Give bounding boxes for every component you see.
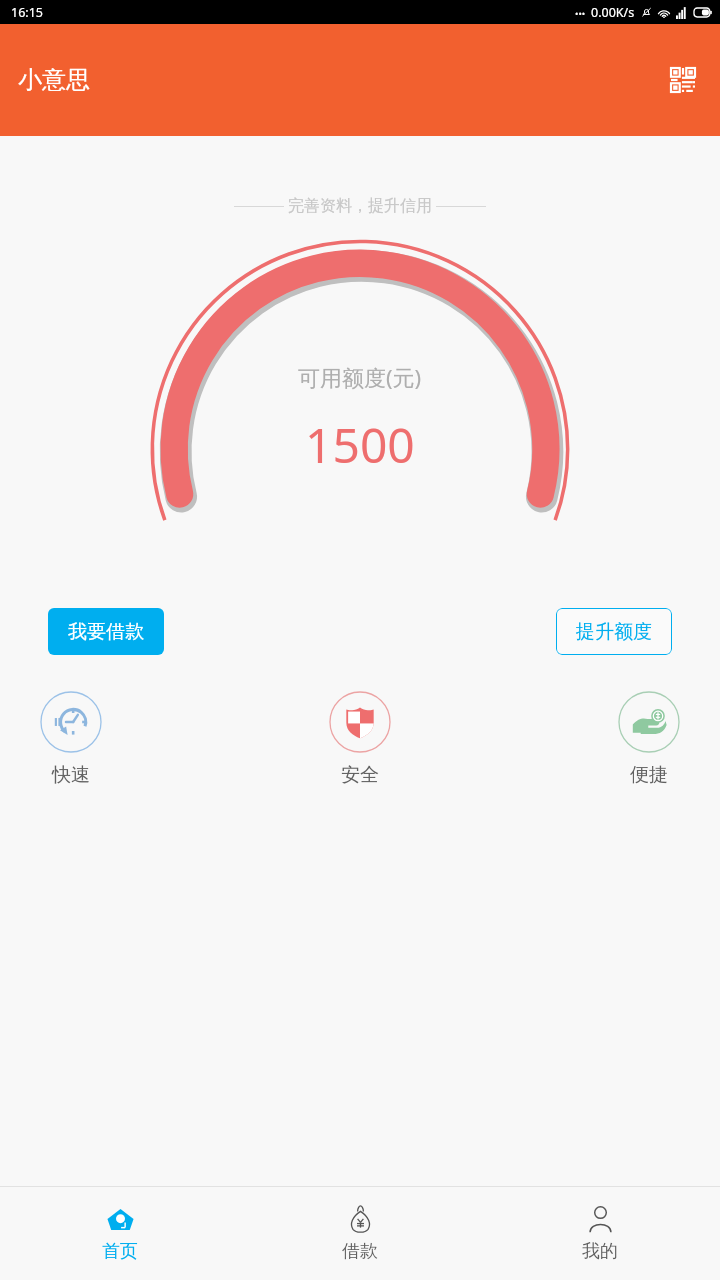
- staticText: 快速: [52, 763, 90, 787]
- staticText: 我的: [582, 1240, 618, 1263]
- staticText: •••: [575, 7, 586, 19]
- button[interactable]: 快速: [40, 691, 102, 787]
- staticText: 便捷: [630, 763, 668, 787]
- staticText: 可用额度(元): [298, 362, 422, 392]
- staticText: 提升额度: [576, 620, 652, 644]
- staticText: 16:15: [11, 4, 43, 21]
- button[interactable]: 安全: [329, 691, 391, 787]
- button[interactable]: 首页: [0, 1187, 240, 1280]
- staticText: 小意思: [18, 65, 90, 95]
- staticText: 安全: [341, 763, 379, 787]
- staticText: 完善资料，提升信用: [288, 196, 432, 216]
- staticText: 首页: [102, 1240, 138, 1263]
- button[interactable]: 提升额度: [556, 608, 672, 655]
- staticText: 借款: [342, 1240, 378, 1263]
- staticText: 1500: [305, 412, 415, 477]
- button[interactable]: 借款: [240, 1187, 480, 1280]
- button[interactable]: 我要借款: [48, 608, 164, 655]
- button[interactable]: 我的: [480, 1187, 720, 1280]
- button[interactable]: 便捷: [618, 691, 680, 787]
- button[interactable]: Scan QR code: [660, 57, 706, 103]
- staticText: 0.00K/s: [591, 4, 635, 21]
- staticText: 我要借款: [68, 620, 144, 644]
